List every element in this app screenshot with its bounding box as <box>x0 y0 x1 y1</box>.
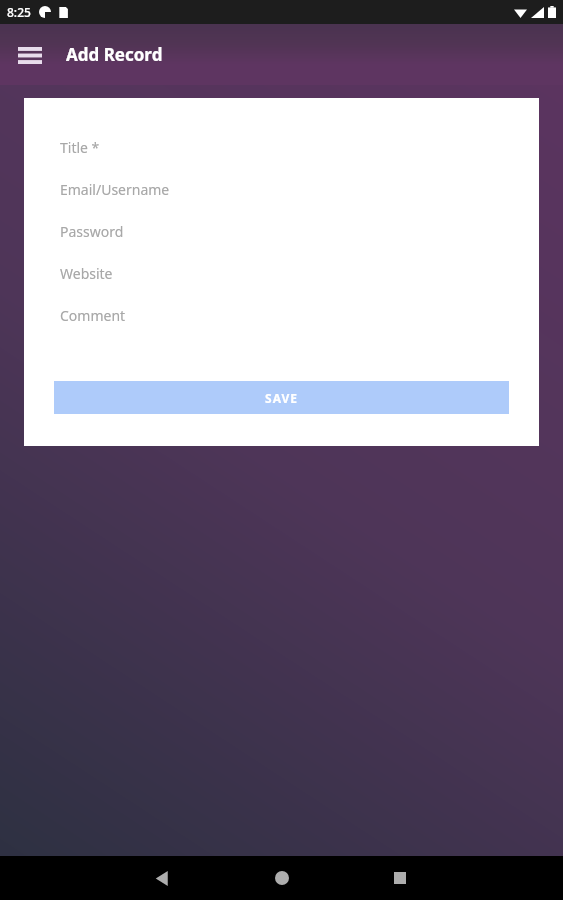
button[interactable]: SAVE <box>54 381 509 414</box>
button[interactable]: Password <box>24 210 539 252</box>
button[interactable]: Website <box>24 252 539 294</box>
staticText: Title * <box>60 138 100 157</box>
staticText: SAVE <box>265 390 298 406</box>
staticText: Comment <box>60 306 126 325</box>
button[interactable]: Back <box>140 856 184 900</box>
button[interactable]: Recent apps <box>378 856 422 900</box>
staticText: Password <box>60 222 124 241</box>
staticText: 8:25 <box>7 4 31 20</box>
staticText: Add Record <box>66 43 163 66</box>
button[interactable]: Title * <box>24 126 539 168</box>
staticText: Website <box>60 264 113 283</box>
button[interactable]: Email/Username <box>24 168 539 210</box>
staticText: Email/Username <box>60 180 170 199</box>
button[interactable]: Comment <box>24 294 539 336</box>
button[interactable]: Open navigation menu <box>8 33 52 77</box>
button[interactable]: Home <box>260 856 304 900</box>
